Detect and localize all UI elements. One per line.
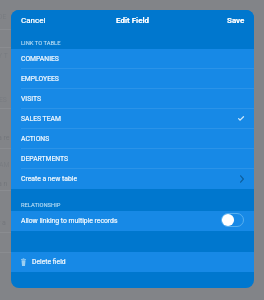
button[interactable]: Save bbox=[217, 10, 254, 30]
staticText: Create a new table bbox=[21, 175, 78, 183]
other: Allow linking toggle bbox=[221, 213, 244, 227]
staticText: LINK TO TABLE bbox=[21, 40, 61, 47]
staticText: ACTIONS bbox=[21, 135, 50, 143]
button[interactable]: Delete bbox=[11, 252, 254, 272]
staticText: Delete field bbox=[32, 258, 66, 266]
staticText: a re bbox=[0, 134, 10, 142]
other: Open bbox=[240, 175, 244, 183]
staticText: Allow linking to multiple records bbox=[21, 217, 118, 225]
button[interactable]: Create a new table bbox=[11, 169, 254, 189]
staticText: DEPARTMENTS bbox=[21, 155, 69, 163]
button[interactable]: COMPANIES bbox=[11, 49, 254, 68]
staticText: RELATIONSHIP bbox=[21, 202, 61, 209]
button[interactable]: Allow linking to multiple records bbox=[11, 211, 254, 231]
staticText: EMPLOYEES bbox=[21, 75, 59, 83]
other: Delete bbox=[21, 258, 26, 266]
staticText: Cancel bbox=[21, 16, 46, 25]
button[interactable]: Cancel bbox=[11, 10, 56, 30]
staticText: VISITS bbox=[21, 95, 42, 103]
staticText: a n bbox=[0, 180, 8, 188]
staticText: Edit Field bbox=[116, 16, 150, 25]
button[interactable]: VISITS bbox=[11, 89, 254, 108]
button[interactable]: DEPARTMENTS bbox=[11, 149, 254, 168]
staticText: COMPANIES bbox=[21, 55, 59, 63]
button[interactable]: SALES TEAM bbox=[11, 109, 254, 128]
staticText: Save bbox=[227, 16, 245, 25]
staticText: SALES TEAM bbox=[21, 115, 61, 123]
button[interactable]: ACTIONS bbox=[11, 129, 254, 148]
staticText: r a bbox=[0, 219, 6, 227]
button[interactable]: EMPLOYEES bbox=[11, 69, 254, 88]
